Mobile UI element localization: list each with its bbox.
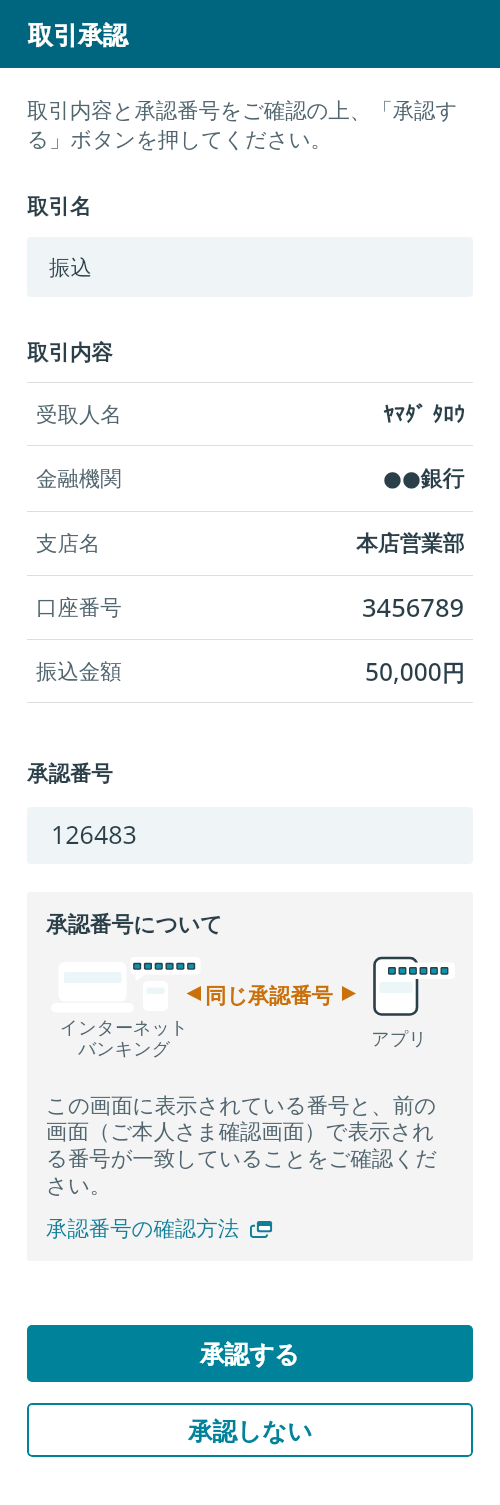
staticText: 承認番号について	[46, 911, 223, 938]
staticText: ﾔﾏﾀﾞ ﾀﾛｳ	[383, 399, 465, 429]
staticText: 承認しない	[188, 1416, 313, 1447]
staticText: 金融機関	[36, 465, 122, 492]
staticText: 受取人名	[36, 401, 122, 428]
staticText: 本店営業部	[356, 530, 465, 557]
staticText: 口座番号	[36, 594, 122, 621]
staticText: 承認する	[200, 1339, 300, 1370]
staticText: 126483	[51, 817, 137, 851]
staticText: ●●銀行	[383, 465, 465, 492]
staticText: 取引内容	[27, 339, 113, 366]
staticText: 振込	[49, 254, 92, 281]
button[interactable]: 承認番号の確認方法	[46, 1215, 273, 1242]
staticText: この画面に表示されている番号と、前の画面（ご本人さま確認画面）で表示される番号が…	[46, 1092, 448, 1199]
staticText: 承認番号の確認方法	[46, 1215, 240, 1242]
staticText: 取引名	[27, 193, 92, 220]
staticText: 振込金額	[36, 658, 122, 685]
button[interactable]: 承認する	[27, 1325, 473, 1382]
staticText: 承認番号	[27, 760, 113, 787]
staticText: 50,000	[365, 655, 442, 688]
staticText: アプリ	[329, 1028, 469, 1051]
staticText: 円	[442, 659, 465, 687]
staticText: 取引承認	[28, 20, 128, 51]
staticText: 同じ承認番号	[205, 983, 333, 1010]
staticText: 取引内容と承認番号をご確認の上、「承認する」ボタンを押してください。	[27, 97, 459, 153]
other: 承認番号の確認方法	[250, 1220, 273, 1238]
button[interactable]: 承認しない	[27, 1403, 473, 1457]
staticText: 支店名	[36, 530, 101, 557]
staticText: 3456789	[362, 590, 465, 625]
staticText: インターネット バンキング	[27, 1017, 224, 1061]
